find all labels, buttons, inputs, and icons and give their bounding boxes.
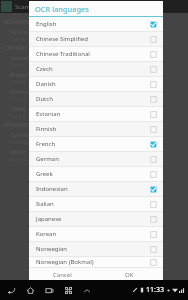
button[interactable]: French xyxy=(29,137,163,151)
button[interactable]: Back xyxy=(5,284,17,296)
button[interactable]: Cancel xyxy=(29,268,96,281)
staticText: Norwegian (Bokmal) xyxy=(36,258,94,266)
staticText: Chinese Traditional xyxy=(36,50,90,58)
staticText: Cancel xyxy=(53,271,72,279)
button[interactable]: Home xyxy=(24,284,36,296)
staticText: Saturation xyxy=(10,54,37,61)
staticText: Chinese Simplified xyxy=(36,35,88,43)
staticText: Italian xyxy=(36,200,54,208)
staticText: Estonian xyxy=(36,110,61,118)
button[interactable]: Indonesian xyxy=(29,182,163,196)
button[interactable]: Chinese Traditional xyxy=(29,47,163,61)
staticText: Greek xyxy=(36,170,53,178)
staticText: Japanese xyxy=(36,215,62,223)
button[interactable]: Italian xyxy=(29,197,163,211)
button[interactable]: Screenshot xyxy=(62,284,74,296)
button[interactable]: Korean xyxy=(29,227,163,241)
staticText: About xyxy=(10,148,26,155)
button[interactable]: German xyxy=(29,152,163,166)
button[interactable]: Chinese Simplified xyxy=(29,32,163,46)
staticText: CONTRAST xyxy=(3,45,27,51)
staticText: Scanner xyxy=(15,3,38,11)
staticText: Version 1.0 xyxy=(10,156,34,162)
staticText: Finnish xyxy=(36,125,57,133)
staticText: German xyxy=(36,155,59,163)
button[interactable]: Recent apps xyxy=(43,284,55,296)
staticText: Danish xyxy=(36,80,56,88)
staticText: Offset xyxy=(10,105,26,112)
staticText: Indonesian xyxy=(36,185,68,193)
staticText: Contrast xyxy=(10,88,33,95)
staticText: Korean xyxy=(36,230,57,238)
staticText: Dutch xyxy=(36,95,53,103)
button[interactable]: Norwegian (Bokmal) xyxy=(29,257,163,267)
staticText: 11:33 xyxy=(146,285,164,295)
staticText: OCR languages xyxy=(10,28,50,35)
staticText: INFORMATION xyxy=(3,122,36,128)
button[interactable]: Expand xyxy=(80,284,93,297)
button[interactable]: Danish xyxy=(29,77,163,91)
staticText: OK xyxy=(125,271,134,279)
staticText: Show again xyxy=(10,139,35,145)
staticText: French xyxy=(36,140,56,148)
button[interactable]: Japanese xyxy=(29,212,163,226)
button[interactable]: OK xyxy=(96,268,163,281)
staticText: RECOGNITION xyxy=(3,19,36,25)
button[interactable]: Dutch xyxy=(29,92,163,106)
staticText: Tutorial xyxy=(10,131,30,138)
button[interactable]: Czech xyxy=(29,62,163,76)
staticText: Czech xyxy=(36,65,53,73)
staticText: Brightness xyxy=(10,71,38,78)
staticText: English xyxy=(36,20,57,28)
button[interactable]: Finnish xyxy=(29,122,163,136)
button[interactable]: English xyxy=(29,17,163,31)
staticText: English, French xyxy=(10,36,43,42)
button[interactable]: Estonian xyxy=(29,107,163,121)
staticText: OCR languages xyxy=(35,4,89,14)
staticText: Norwegian xyxy=(36,245,68,253)
button[interactable]: Norwegian xyxy=(29,242,163,256)
button[interactable]: Greek xyxy=(29,167,163,181)
